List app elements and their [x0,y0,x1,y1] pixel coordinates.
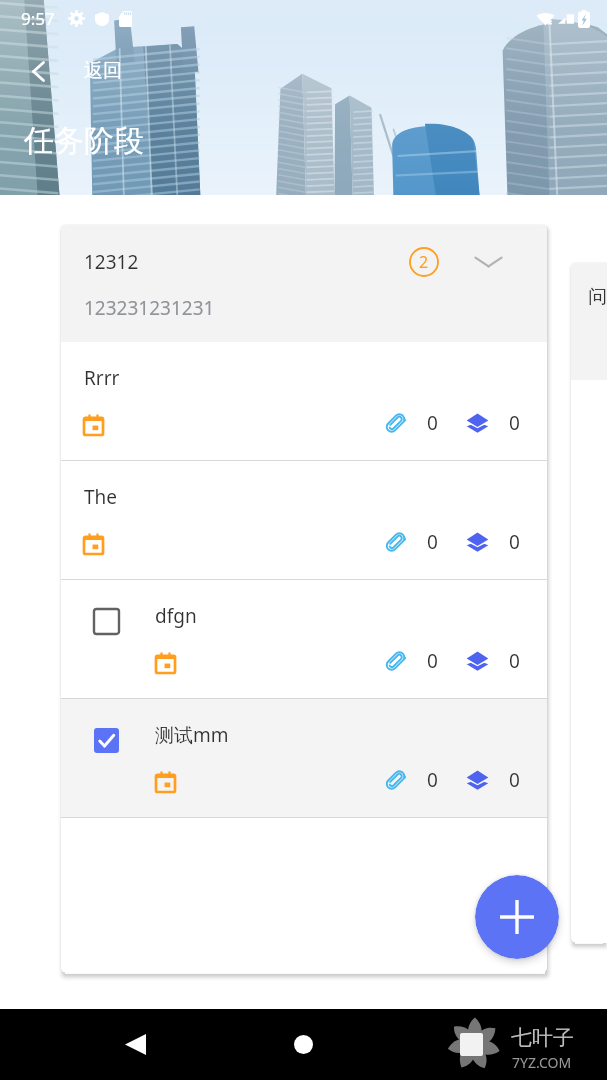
staticText: The [84,484,118,510]
button[interactable]: Expand [471,245,505,279]
staticText: dfgn [155,603,197,629]
button[interactable]: 返回 [70,47,136,95]
button[interactable]: Home [268,1009,338,1080]
button[interactable]: 问 [571,263,607,943]
staticText: 0 [509,529,520,555]
button[interactable]: Rrrr [61,342,547,460]
staticText: 9:57 [21,7,55,30]
staticText: 0 [427,767,438,793]
button[interactable]: Recents [436,1009,506,1080]
button[interactable]: Unchecked [61,580,547,698]
staticText: 123231231231 [84,295,215,321]
staticText: 7YZ.COM [512,1053,572,1072]
staticText: 任务阶段 [24,122,144,160]
staticText: 测试mm [155,722,229,748]
staticText: 0 [427,648,438,674]
button[interactable]: Back [14,47,62,95]
staticText: 0 [509,410,520,436]
button[interactable]: Add [475,875,559,959]
staticText: 返回 [84,59,122,83]
staticText: 12312 [84,249,139,275]
staticText: 0 [427,529,438,555]
staticText: 0 [509,648,520,674]
staticText: 问 [588,285,607,309]
button[interactable]: Back [100,1009,170,1080]
button[interactable]: The [61,461,547,579]
staticText: 2 [419,251,429,273]
button[interactable]: Checked [94,728,119,753]
staticText: Rrrr [84,365,120,391]
button[interactable]: Checked [61,699,547,817]
staticText: 七叶子 [511,1025,574,1051]
staticText: 0 [509,767,520,793]
button[interactable]: 12312 [61,225,547,342]
staticText: 0 [427,410,438,436]
button[interactable]: Unchecked [94,609,119,634]
